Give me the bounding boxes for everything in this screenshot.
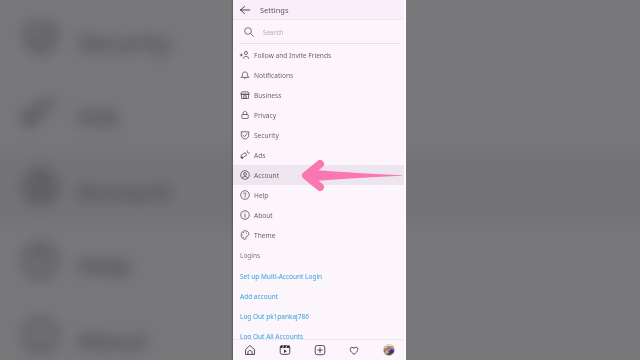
staticText: Settings [260,5,289,15]
button[interactable]: Ads [233,145,406,165]
button[interactable]: Activity [344,340,364,360]
staticText: Notifications [254,71,294,80]
button[interactable]: Account [233,165,406,185]
staticText: Account [254,171,280,180]
button[interactable]: Reels [275,340,295,360]
button[interactable]: Profile [379,340,399,360]
button[interactable]: Help [233,185,406,205]
button[interactable]: Create [310,340,330,360]
button[interactable]: Business [233,85,406,105]
button[interactable]: Privacy [233,105,406,125]
staticText: Ads [254,151,266,160]
staticText: Add account [240,292,279,301]
button[interactable]: Search [233,20,406,44]
staticText: Logins [240,251,261,260]
staticText: About [254,211,273,220]
button[interactable]: Home [240,340,260,360]
staticText: Help [77,248,132,282]
staticText: Help [254,191,269,200]
staticText: About [77,323,148,357]
button[interactable]: Add account [233,286,406,306]
staticText: Log Out All Accounts [240,332,304,341]
staticText: Search [263,28,284,37]
button[interactable]: Log Out pk1pankaj786 [233,306,406,326]
staticText: Theme [254,231,276,240]
button[interactable]: Log Out All Accounts [233,326,406,346]
button[interactable]: About [233,205,406,225]
staticText: Security [77,25,171,59]
staticText: Ads [77,99,121,133]
staticText: Privacy [254,111,276,120]
button[interactable]: Theme [233,225,406,245]
button[interactable]: Back [237,2,253,18]
button[interactable]: Notifications [233,65,406,85]
button[interactable]: Security [233,125,406,145]
staticText: Account [77,174,173,208]
staticText: Security [254,131,279,140]
button[interactable]: Set up Multi-Account Login [233,266,406,286]
staticText: Set up Multi-Account Login [240,272,323,281]
staticText: Log Out pk1pankaj786 [240,312,309,321]
staticText: Follow and Invite Friends [254,51,332,60]
button[interactable]: Follow and Invite Friends [233,45,406,65]
staticText: Business [254,91,282,100]
